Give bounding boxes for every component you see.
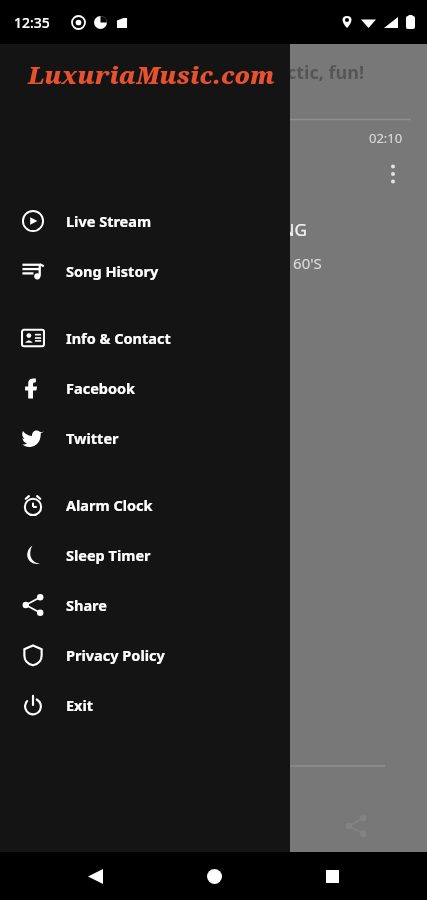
- button[interactable]: Live Stream: [0, 196, 290, 246]
- staticText: Privacy Policy: [66, 645, 165, 665]
- button[interactable]: Facebook: [0, 363, 290, 413]
- staticText: 12:35: [14, 13, 50, 32]
- staticText: Facebook: [66, 378, 136, 398]
- button[interactable]: Share: [0, 580, 290, 630]
- button[interactable]: Recents: [308, 852, 356, 900]
- button[interactable]: Exit: [0, 680, 290, 730]
- button[interactable]: Song History: [0, 246, 290, 296]
- button[interactable]: Twitter: [0, 413, 290, 463]
- staticText: Song History: [66, 261, 159, 281]
- button[interactable]: Back: [71, 852, 119, 900]
- staticText: Share: [66, 595, 107, 615]
- staticText: Info & Contact: [66, 328, 171, 348]
- staticText: Alarm Clock: [66, 495, 153, 515]
- staticText: Exit: [66, 695, 94, 715]
- button[interactable]: Privacy Policy: [0, 630, 290, 680]
- staticText: Sleep Timer: [66, 545, 151, 565]
- button[interactable]: Open navigation menu: [12, 48, 60, 96]
- button[interactable]: Sleep Timer: [0, 530, 290, 580]
- staticText: LuxuriaMusic.com: [28, 58, 275, 91]
- button[interactable]: [68, 754, 403, 778]
- staticText: DICK WALTER · SWINGING 60'S: [105, 253, 322, 273]
- staticText: HACIENDA HAPPENING: [120, 218, 307, 241]
- button[interactable]: Share: [285, 800, 427, 852]
- staticText: Live Stream: [66, 211, 152, 231]
- staticText: Twitter: [66, 428, 119, 448]
- staticText: 02:10: [369, 129, 403, 147]
- button[interactable]: Home: [190, 852, 238, 900]
- button[interactable]: Info & Contact: [0, 313, 290, 363]
- staticText: LuxuriaMusic - Cool, eclectic, fun!: [66, 60, 364, 85]
- button[interactable]: More options: [377, 158, 409, 190]
- button[interactable]: Alarm Clock: [0, 480, 290, 530]
